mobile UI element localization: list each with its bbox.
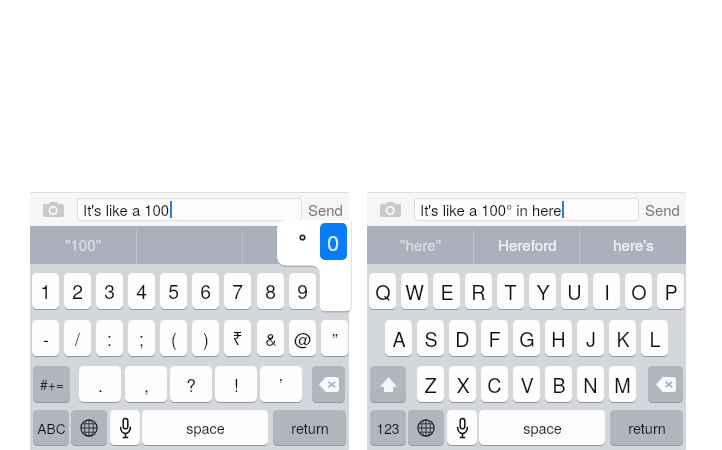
other: Dictation bbox=[120, 418, 131, 438]
button[interactable]: M bbox=[609, 366, 636, 404]
button[interactable]: 9 bbox=[289, 273, 316, 311]
button[interactable]: N bbox=[577, 366, 604, 404]
button[interactable]: ; bbox=[128, 320, 155, 358]
button[interactable]: ! bbox=[215, 366, 257, 404]
button[interactable]: Backspace bbox=[648, 366, 683, 404]
button[interactable]: Dictation bbox=[447, 410, 477, 447]
button[interactable]: Shift bbox=[370, 366, 406, 404]
button[interactable]: Camera bbox=[380, 202, 401, 217]
staticText: Q bbox=[375, 277, 391, 305]
button[interactable]: Switch keyboard bbox=[71, 410, 107, 447]
staticText: Z bbox=[424, 370, 437, 398]
button[interactable]: G bbox=[513, 320, 540, 358]
button[interactable]: C bbox=[481, 366, 508, 404]
button[interactable]: 1 bbox=[32, 273, 59, 311]
button[interactable]: T bbox=[497, 273, 524, 311]
button[interactable]: O bbox=[625, 273, 652, 311]
button[interactable]: : bbox=[96, 320, 123, 358]
button[interactable]: - bbox=[32, 320, 59, 358]
button[interactable]: L bbox=[641, 320, 668, 358]
button[interactable]: 2 bbox=[64, 273, 91, 311]
button[interactable]: R bbox=[465, 273, 492, 311]
button[interactable]: X bbox=[449, 366, 476, 404]
button[interactable]: V bbox=[513, 366, 540, 404]
button[interactable]: ₹ bbox=[224, 320, 251, 358]
button[interactable]: S bbox=[417, 320, 444, 358]
button[interactable]: 123 bbox=[370, 410, 406, 447]
staticText: B bbox=[552, 370, 566, 398]
button[interactable]: K bbox=[609, 320, 636, 358]
button[interactable]: . bbox=[79, 366, 121, 404]
button[interactable]: & bbox=[257, 320, 284, 358]
button[interactable]: here's bbox=[580, 226, 686, 264]
staticText: 4 bbox=[136, 277, 147, 305]
button[interactable]: / bbox=[64, 320, 91, 358]
staticText: "here" bbox=[400, 234, 442, 256]
button[interactable]: Y bbox=[529, 273, 556, 311]
button[interactable]: ’ bbox=[260, 366, 302, 404]
button[interactable]: 8 bbox=[257, 273, 284, 311]
button[interactable]: 5 bbox=[160, 273, 187, 311]
staticText: F bbox=[488, 324, 501, 352]
button[interactable]: "here" bbox=[367, 226, 474, 264]
button[interactable]: It's like a 100° in here bbox=[415, 199, 638, 220]
button[interactable]: It's like a 100 bbox=[78, 199, 301, 220]
button[interactable]: Switch keyboard bbox=[408, 410, 444, 447]
staticText: G bbox=[519, 324, 535, 352]
staticText: . bbox=[98, 372, 103, 397]
staticText: It's like a 100 bbox=[83, 199, 170, 220]
button[interactable]: A bbox=[385, 320, 412, 358]
button[interactable]: ( bbox=[160, 320, 187, 358]
button[interactable]: ? bbox=[170, 366, 212, 404]
button[interactable]: #+= bbox=[33, 366, 70, 404]
button[interactable]: @ bbox=[289, 320, 316, 358]
button[interactable]: space bbox=[142, 410, 268, 447]
button[interactable]: W bbox=[401, 273, 428, 311]
button[interactable]: E bbox=[433, 273, 460, 311]
staticText: N bbox=[583, 370, 598, 398]
button[interactable]: Camera bbox=[43, 202, 64, 217]
button[interactable]: D bbox=[449, 320, 476, 358]
button[interactable]: 6 bbox=[192, 273, 219, 311]
button[interactable]: ABC bbox=[33, 410, 69, 447]
button[interactable]: 7 bbox=[224, 273, 251, 311]
staticText: return bbox=[628, 417, 666, 438]
staticText: space bbox=[186, 417, 225, 438]
button[interactable]: Send bbox=[645, 199, 680, 220]
button[interactable]: Q bbox=[369, 273, 396, 311]
button[interactable]: 3 bbox=[96, 273, 123, 311]
button[interactable]: return bbox=[273, 410, 346, 447]
button[interactable]: 0 bbox=[320, 223, 347, 260]
button[interactable] bbox=[243, 226, 349, 264]
staticText: here's bbox=[613, 234, 654, 256]
button[interactable]: U bbox=[561, 273, 588, 311]
button[interactable]: F bbox=[481, 320, 508, 358]
staticText: A bbox=[392, 324, 406, 352]
button[interactable]: J bbox=[577, 320, 604, 358]
button[interactable]: ) bbox=[192, 320, 219, 358]
button[interactable]: , bbox=[125, 366, 167, 404]
staticText: ! bbox=[234, 372, 239, 397]
button[interactable]: Dictation bbox=[110, 410, 140, 447]
button[interactable]: ” bbox=[321, 320, 348, 358]
staticText: Send bbox=[645, 199, 680, 220]
staticText: P bbox=[664, 277, 678, 305]
button[interactable]: B bbox=[545, 366, 572, 404]
button[interactable]: Send bbox=[308, 199, 343, 220]
staticText: 9 bbox=[297, 277, 308, 305]
button[interactable]: P bbox=[657, 273, 684, 311]
staticText: M bbox=[614, 370, 631, 398]
button[interactable]: space bbox=[479, 410, 605, 447]
button[interactable]: "100" bbox=[30, 226, 137, 264]
button[interactable]: return bbox=[610, 410, 683, 447]
button[interactable]: H bbox=[545, 320, 572, 358]
button[interactable]: Z bbox=[417, 366, 444, 404]
button[interactable]: Backspace bbox=[312, 366, 345, 404]
button[interactable]: Hereford bbox=[474, 226, 580, 264]
button[interactable]: I bbox=[593, 273, 620, 311]
staticText: E bbox=[440, 277, 454, 305]
staticText: @ bbox=[294, 326, 312, 351]
button[interactable]: 4 bbox=[128, 273, 155, 311]
